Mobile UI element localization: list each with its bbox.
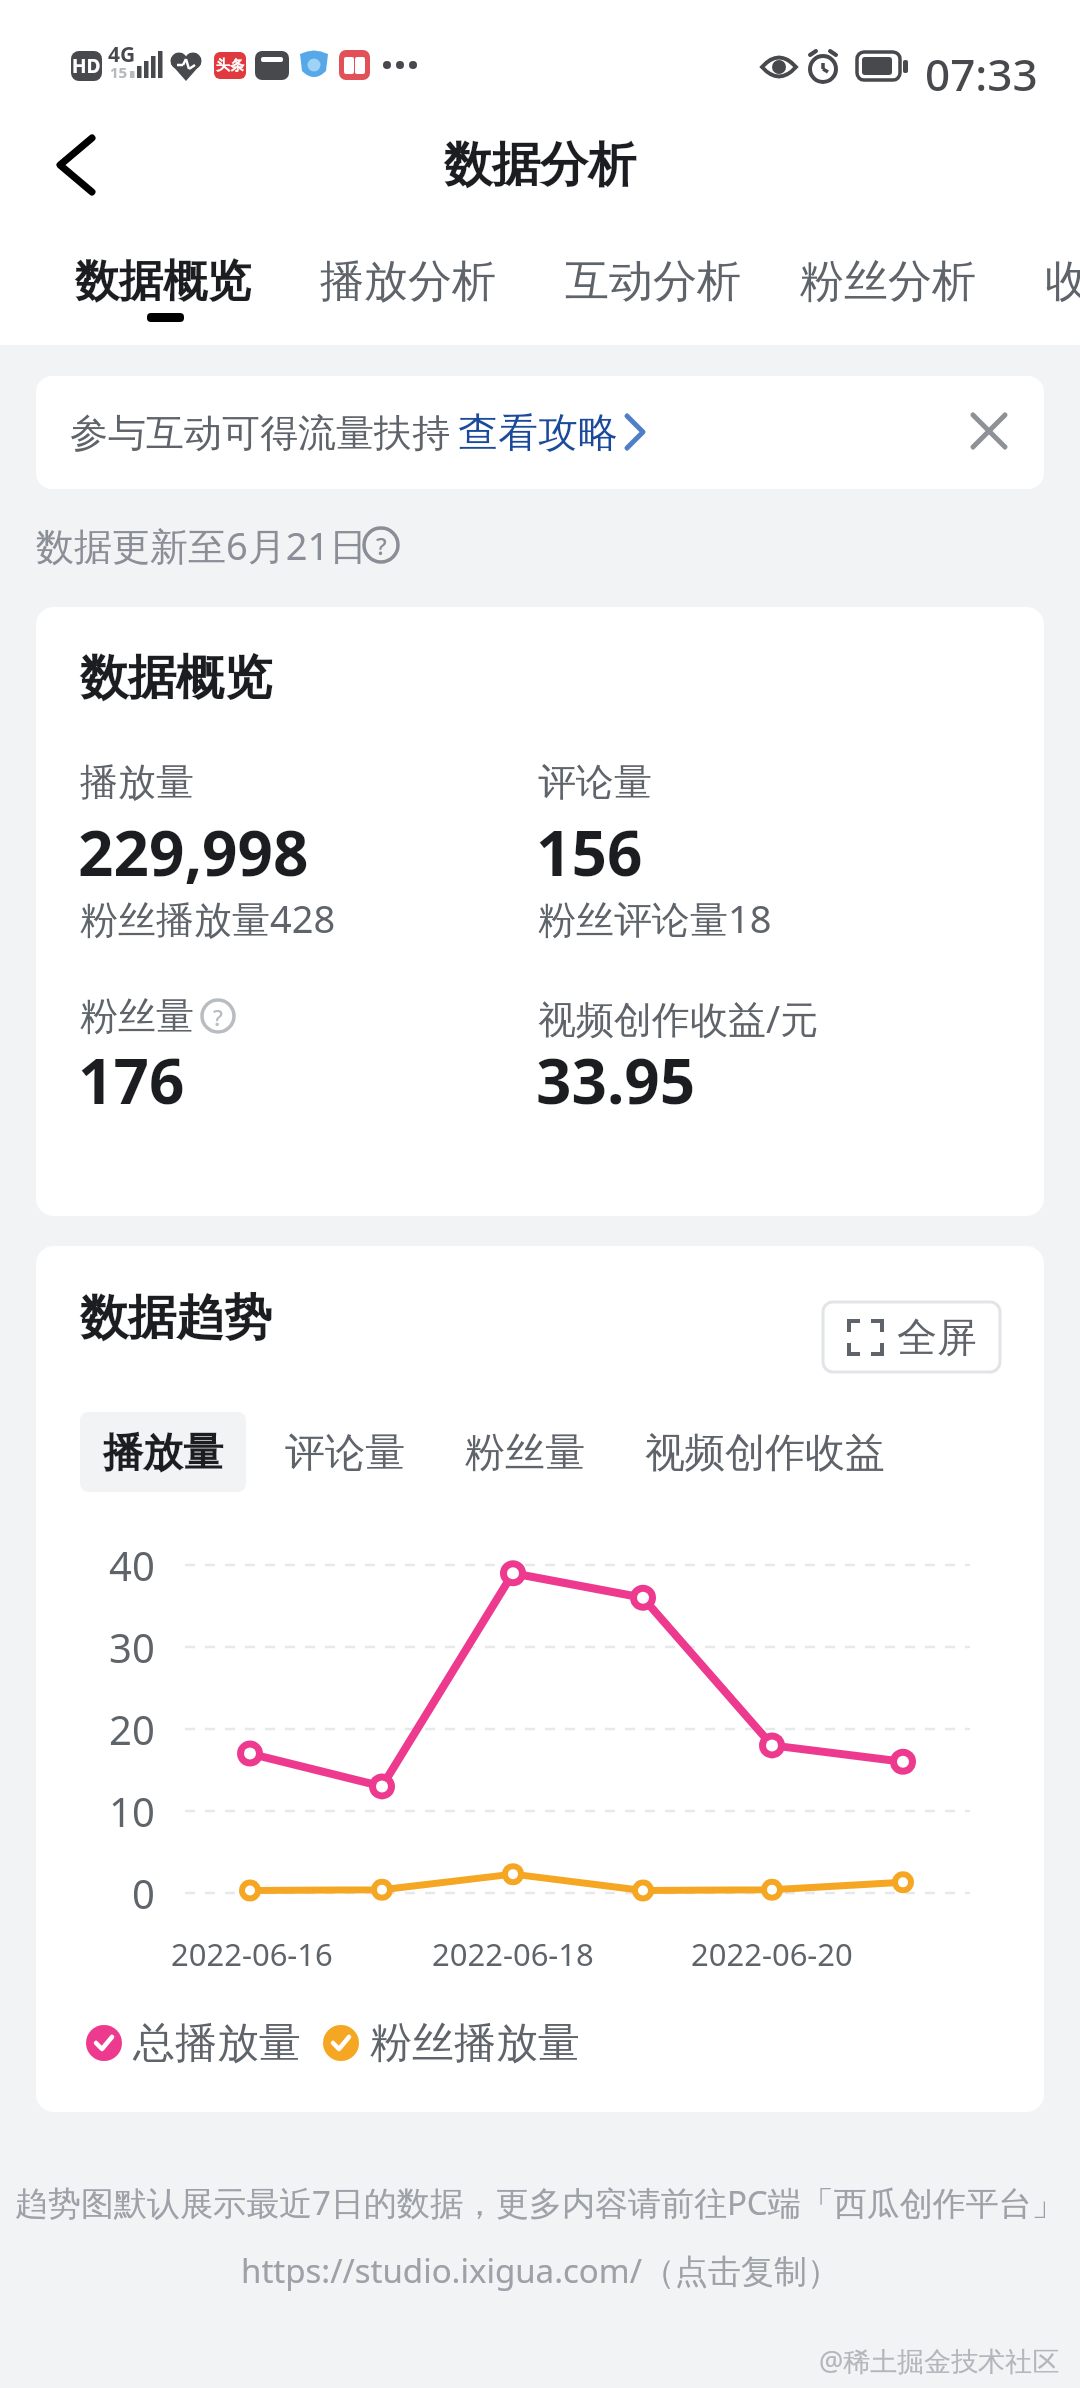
staticText: 参与互动可得流量扶持: [70, 409, 450, 457]
button[interactable]: [823, 1302, 1000, 1372]
button[interactable]: 总播放量: [80, 2010, 295, 2076]
staticText: ?: [213, 1002, 223, 1032]
staticText: 数据概览: [75, 254, 251, 309]
staticText: 趋势图默认展示最近7日的数据，更多内容请前往PC端「西瓜创作平台」: [15, 2180, 1065, 2225]
staticText: 数据更新至6月21日: [36, 519, 368, 571]
staticText: ?: [376, 529, 387, 562]
button[interactable]: 查看攻略: [458, 386, 658, 478]
button[interactable]: [80, 1412, 246, 1492]
staticText: 全屏: [897, 1312, 977, 1362]
staticText: 07:33: [925, 44, 1038, 104]
staticText: 2022-06-16: [171, 1933, 333, 1975]
staticText: 播放分析: [320, 254, 496, 309]
button[interactable]: [950, 396, 1026, 472]
staticText: 视频创作收益: [645, 1427, 885, 1477]
staticText: HD: [72, 53, 101, 79]
staticText: 0: [132, 1866, 155, 1920]
staticText: 头条: [216, 57, 244, 75]
button[interactable]: 粉丝分析: [785, 240, 995, 330]
staticText: 229,998: [78, 810, 309, 894]
staticText: 播放量: [80, 758, 194, 806]
staticText: 20: [109, 1702, 155, 1756]
staticText: 收藏分析: [1045, 254, 1080, 309]
staticText: 粉丝量: [80, 992, 194, 1040]
staticText: 总播放量: [133, 2017, 301, 2070]
button[interactable]: 数据概览: [60, 240, 270, 330]
button[interactable]: [40, 120, 110, 210]
button[interactable]: 视频创作收益: [645, 1412, 885, 1492]
staticText: 30: [109, 1620, 155, 1674]
staticText: 40: [109, 1538, 155, 1592]
staticText: 数据趋势: [80, 1288, 272, 1348]
staticText: 4G: [108, 40, 136, 69]
button[interactable]: 互动分析: [550, 240, 760, 330]
staticText: @稀土掘金技术社区: [819, 2342, 1060, 2379]
staticText: 查看攻略: [458, 407, 618, 457]
staticText: 粉丝播放量: [370, 2017, 580, 2070]
staticText: 粉丝量: [465, 1427, 585, 1477]
staticText: 2022-06-20: [691, 1933, 853, 1975]
button[interactable]: [36, 376, 1044, 489]
staticText: 176: [78, 1038, 185, 1122]
staticText: https://studio.ixigua.com/（点击复制）: [241, 2248, 840, 2293]
staticText: 156: [536, 810, 643, 894]
staticText: 10: [109, 1784, 155, 1838]
staticText: 15: [110, 62, 128, 82]
staticText: 互动分析: [565, 254, 741, 309]
button[interactable]: 评论量: [285, 1412, 405, 1492]
button[interactable]: https://studio.ixigua.com/（点击复制）: [150, 2240, 930, 2300]
button[interactable]: 粉丝量: [465, 1412, 585, 1492]
staticText: 评论量: [538, 758, 652, 806]
staticText: 2022-06-18: [432, 1933, 594, 1975]
staticText: 粉丝分析: [800, 254, 976, 309]
button[interactable]: 播放分析: [305, 240, 515, 330]
button[interactable]: 粉丝播放量: [317, 2010, 577, 2076]
staticText: 播放量: [103, 1427, 223, 1477]
staticText: 评论量: [285, 1427, 405, 1477]
staticText: 33.95: [536, 1038, 696, 1122]
staticText: 粉丝评论量18: [538, 892, 772, 944]
staticText: 数据分析: [444, 135, 636, 195]
staticText: 数据概览: [80, 648, 272, 708]
staticText: 粉丝播放量428: [80, 892, 336, 944]
staticText: 视频创作收益/元: [538, 992, 819, 1044]
